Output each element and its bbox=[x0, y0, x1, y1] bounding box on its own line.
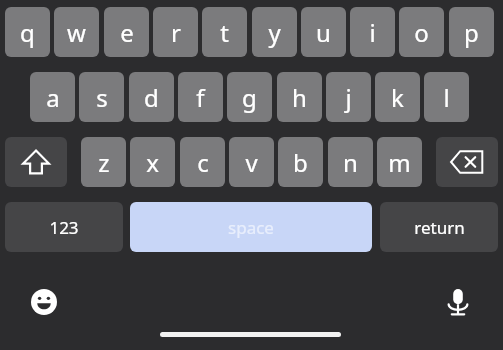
button[interactable]: b bbox=[278, 137, 323, 187]
button[interactable]: t bbox=[202, 7, 247, 57]
button[interactable]: p bbox=[449, 7, 494, 57]
staticText: x bbox=[146, 146, 159, 179]
staticText: e bbox=[120, 16, 134, 49]
staticText: d bbox=[144, 81, 159, 114]
staticText: j bbox=[345, 81, 352, 114]
button[interactable]: x bbox=[130, 137, 175, 187]
button[interactable]: l bbox=[424, 72, 469, 122]
button[interactable]: q bbox=[5, 7, 50, 57]
staticText: r bbox=[171, 16, 181, 49]
button[interactable]: j bbox=[326, 72, 371, 122]
button[interactable]: Shift bbox=[5, 137, 67, 187]
button[interactable]: z bbox=[81, 137, 126, 187]
staticText: t bbox=[220, 16, 229, 49]
button[interactable]: u bbox=[301, 7, 346, 57]
button[interactable]: o bbox=[399, 7, 444, 57]
staticText: b bbox=[293, 146, 308, 179]
staticText: y bbox=[268, 16, 281, 49]
staticText: space bbox=[228, 216, 274, 239]
staticText: p bbox=[464, 16, 479, 49]
button[interactable]: a bbox=[30, 72, 75, 122]
button[interactable]: g bbox=[227, 72, 272, 122]
button[interactable]: k bbox=[375, 72, 420, 122]
staticText: l bbox=[443, 81, 450, 114]
staticText: v bbox=[245, 146, 258, 179]
staticText: f bbox=[196, 81, 205, 114]
button[interactable]: m bbox=[377, 137, 422, 187]
button[interactable]: r bbox=[153, 7, 198, 57]
staticText: 123 bbox=[49, 216, 79, 239]
button[interactable]: d bbox=[129, 72, 174, 122]
button[interactable]: n bbox=[328, 137, 373, 187]
button[interactable]: e bbox=[104, 7, 149, 57]
button[interactable]: w bbox=[54, 7, 99, 57]
staticText: z bbox=[98, 146, 110, 179]
button[interactable]: return bbox=[380, 202, 498, 252]
staticText: a bbox=[46, 81, 60, 114]
button[interactable]: c bbox=[180, 137, 225, 187]
staticText: m bbox=[388, 146, 411, 179]
button[interactable]: f bbox=[178, 72, 223, 122]
staticText: c bbox=[197, 146, 209, 179]
staticText: return bbox=[414, 216, 465, 239]
staticText: u bbox=[316, 16, 331, 49]
staticText: o bbox=[414, 16, 429, 49]
button[interactable]: 123 bbox=[5, 202, 123, 252]
button[interactable]: s bbox=[79, 72, 124, 122]
staticText: h bbox=[292, 81, 307, 114]
staticText: k bbox=[391, 81, 404, 114]
button[interactable]: space bbox=[130, 202, 372, 252]
staticText: s bbox=[96, 81, 108, 114]
button[interactable]: Voice input bbox=[438, 282, 478, 322]
staticText: n bbox=[343, 146, 358, 179]
staticText: q bbox=[20, 16, 35, 49]
button[interactable]: Backspace bbox=[436, 137, 498, 187]
staticText: i bbox=[369, 16, 376, 49]
button[interactable]: Emoji bbox=[24, 282, 64, 322]
button[interactable]: v bbox=[229, 137, 274, 187]
staticText: w bbox=[67, 16, 86, 49]
button[interactable]: h bbox=[277, 72, 322, 122]
staticText: g bbox=[242, 81, 257, 114]
button[interactable]: y bbox=[252, 7, 297, 57]
button[interactable]: i bbox=[350, 7, 395, 57]
